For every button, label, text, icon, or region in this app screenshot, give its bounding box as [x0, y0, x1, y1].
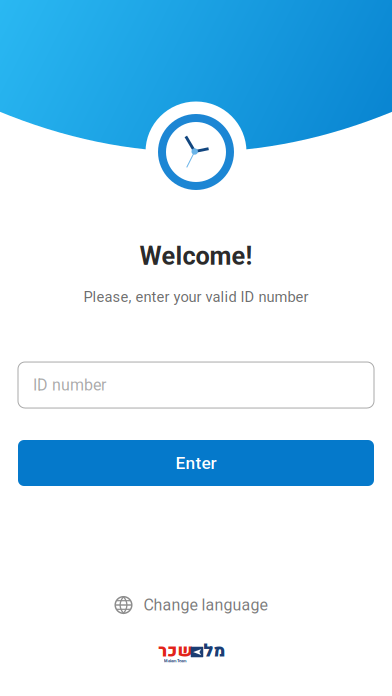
staticText: מל — [203, 638, 225, 664]
staticText: Enter — [175, 453, 216, 473]
staticText: Welcome! — [139, 241, 252, 271]
staticText: Change language — [143, 596, 267, 614]
staticText: Please, enter your valid ID number — [83, 288, 308, 306]
staticText: Malam Team — [164, 659, 186, 663]
staticText: שכר — [158, 638, 193, 664]
staticText: ID number — [33, 376, 106, 394]
button[interactable]: Change language — [101, 592, 281, 618]
button[interactable]: Enter — [18, 440, 374, 486]
